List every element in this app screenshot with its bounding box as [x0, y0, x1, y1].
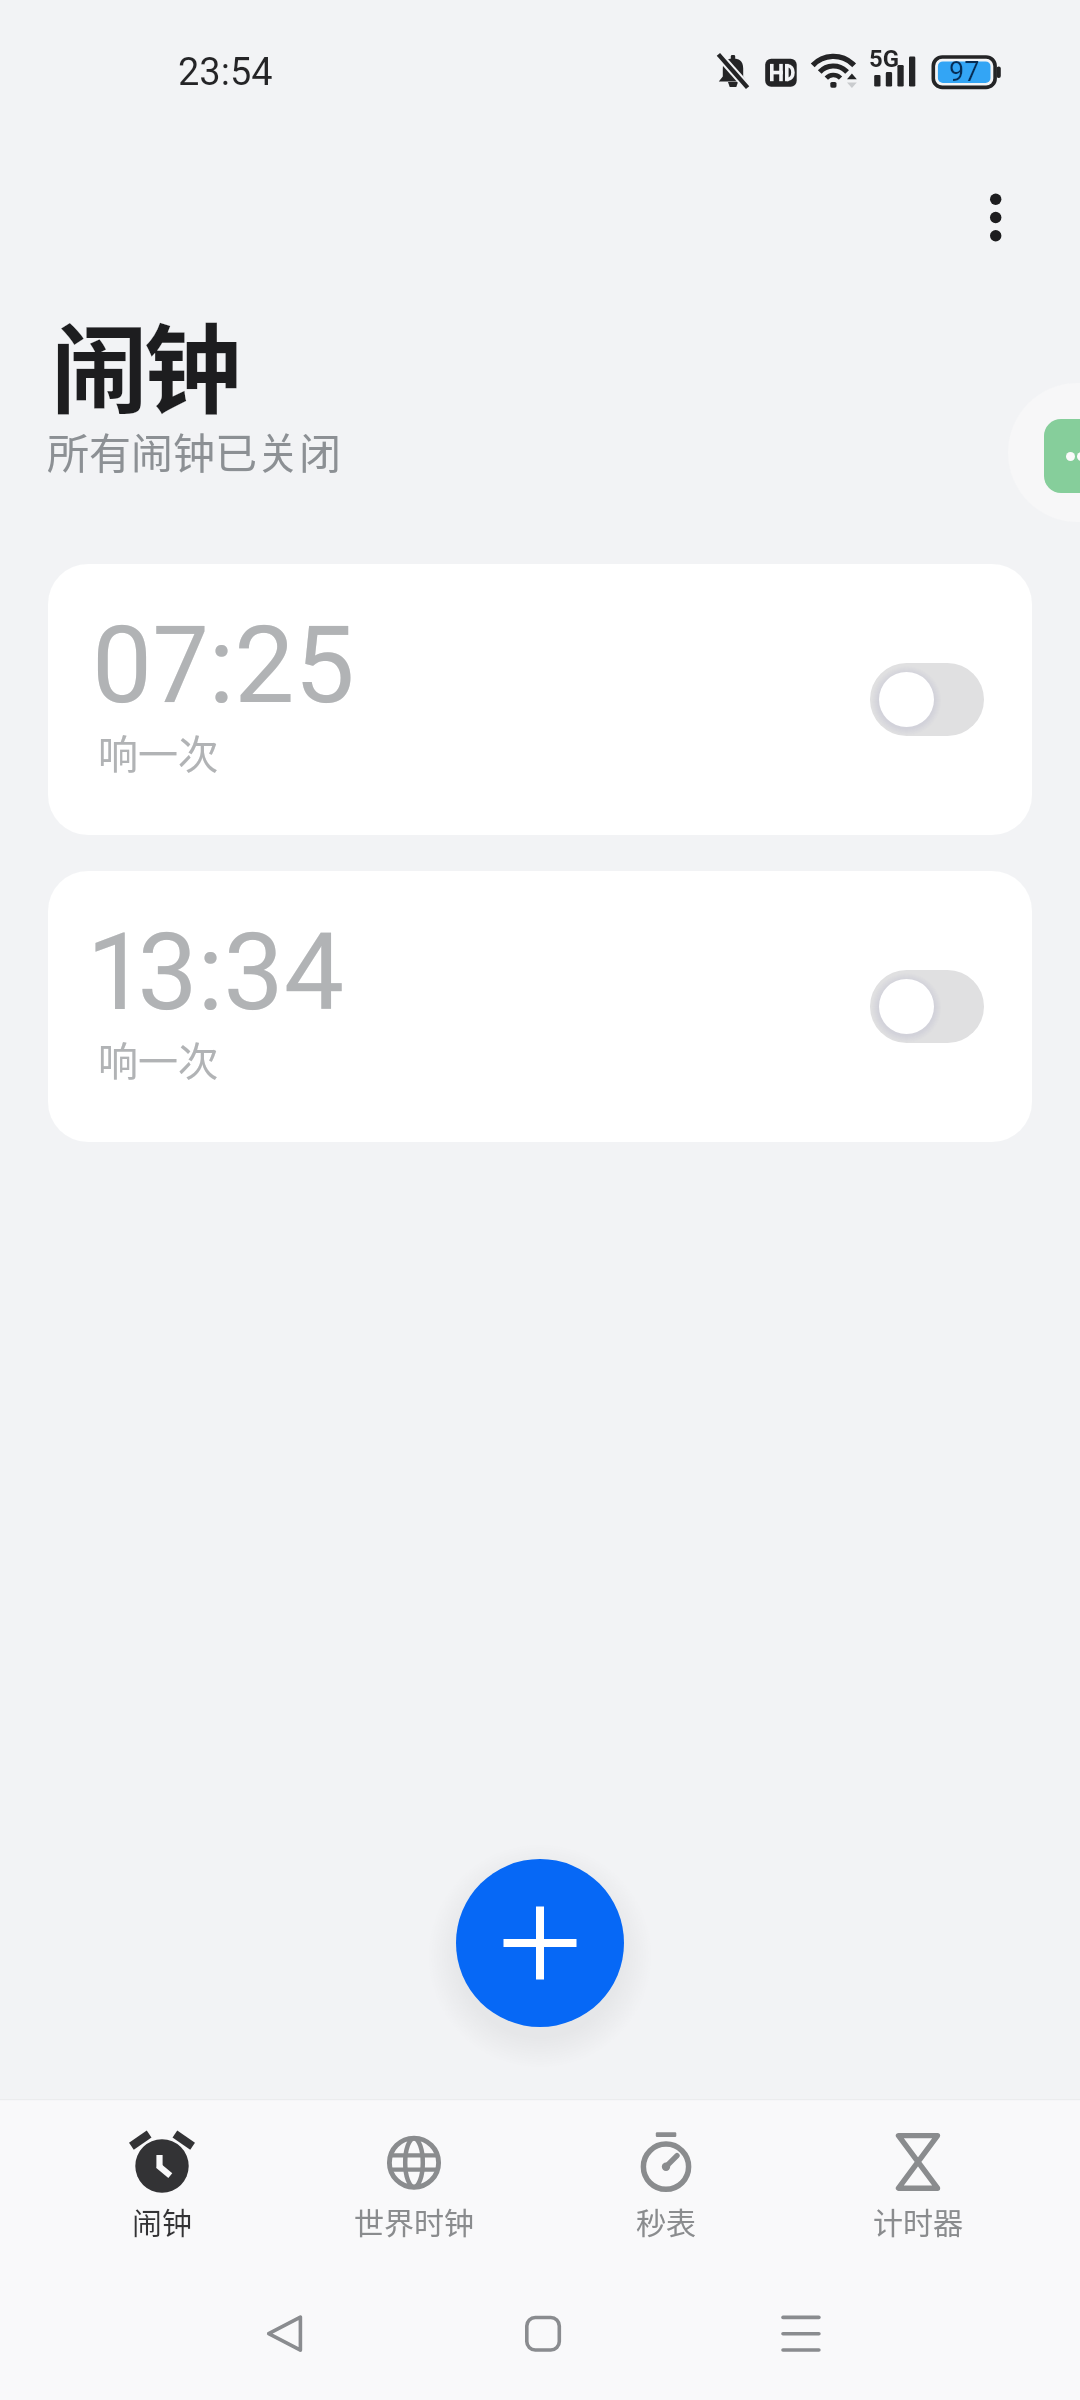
button[interactable]: Alarm toggle [870, 663, 984, 736]
staticText: 秒表 [540, 2199, 792, 2242]
staticText: 07:25 [91, 603, 355, 728]
button[interactable]: Alarm toggle [870, 970, 984, 1043]
staticText: 所有闹钟已关闭 [47, 420, 342, 481]
staticText: 闹钟 [51, 292, 237, 432]
staticText: 97 [949, 56, 980, 88]
button[interactable]: Add alarm [456, 1859, 624, 2027]
button[interactable]: 秒表 [540, 2099, 792, 2259]
staticText: 13:34 [91, 910, 344, 1035]
button[interactable]: Recent apps [741, 2274, 861, 2400]
button[interactable]: Assistant [1008, 383, 1080, 522]
button[interactable]: 世界时钟 [288, 2099, 540, 2259]
staticText: 23:54 [178, 50, 273, 95]
button[interactable]: 闹钟 [36, 2099, 288, 2259]
button[interactable]: 07:25 [48, 564, 1032, 835]
staticText: 响一次 [98, 1030, 218, 1088]
staticText: 计时器 [792, 2199, 1044, 2242]
staticText: 世界时钟 [288, 2199, 540, 2242]
button[interactable]: Back [223, 2274, 343, 2400]
button[interactable]: 计时器 [792, 2099, 1044, 2259]
button[interactable]: More options [948, 169, 1044, 265]
staticText: 响一次 [98, 723, 218, 781]
staticText: 5G [869, 45, 900, 73]
staticText: 闹钟 [36, 2199, 288, 2242]
button[interactable]: 13:34 [48, 871, 1032, 1142]
button[interactable]: Home [483, 2274, 603, 2400]
